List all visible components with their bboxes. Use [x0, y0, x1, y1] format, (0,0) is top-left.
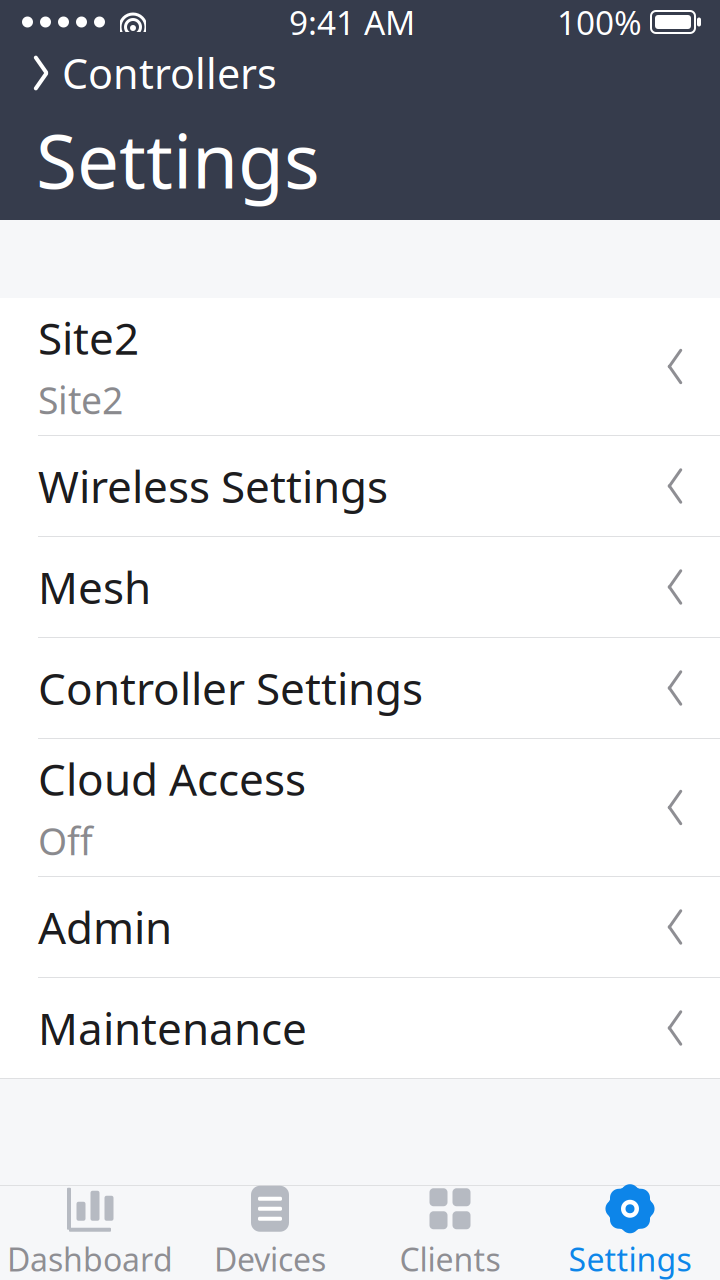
staticText: Off — [38, 816, 93, 865]
button[interactable]: Dashboard — [0, 1186, 180, 1280]
button[interactable]: Settings — [540, 1186, 720, 1280]
staticText: Maintenance — [38, 999, 307, 1057]
staticText: Dashboard — [7, 1238, 173, 1280]
staticText: 100% — [557, 0, 642, 44]
staticText: Wireless Settings — [38, 457, 388, 515]
staticText: Clients — [399, 1238, 500, 1280]
staticText: Settings — [568, 1238, 691, 1280]
button[interactable]: Cloud Access — [0, 739, 720, 876]
button[interactable]: Admin — [0, 877, 720, 977]
staticText: Site2 — [38, 308, 139, 367]
staticText: Controller Settings — [38, 659, 423, 717]
button[interactable]: Controllers — [0, 44, 297, 102]
button[interactable]: Maintenance — [0, 978, 720, 1078]
button[interactable]: Mesh — [0, 537, 720, 637]
staticText: Admin — [38, 898, 172, 956]
staticText: Controllers — [62, 46, 277, 100]
button[interactable]: Site2 — [0, 298, 720, 435]
button[interactable]: Controller Settings — [0, 638, 720, 738]
staticText: Site2 — [38, 375, 123, 424]
staticText: 9:41 AM — [289, 0, 415, 44]
button[interactable]: Clients — [360, 1186, 540, 1280]
button[interactable]: Wireless Settings — [0, 436, 720, 536]
staticText: Mesh — [38, 558, 151, 616]
staticText: Devices — [214, 1238, 326, 1280]
button[interactable]: Devices — [180, 1186, 360, 1280]
staticText: Settings — [36, 110, 320, 209]
staticText: Cloud Access — [38, 749, 306, 808]
